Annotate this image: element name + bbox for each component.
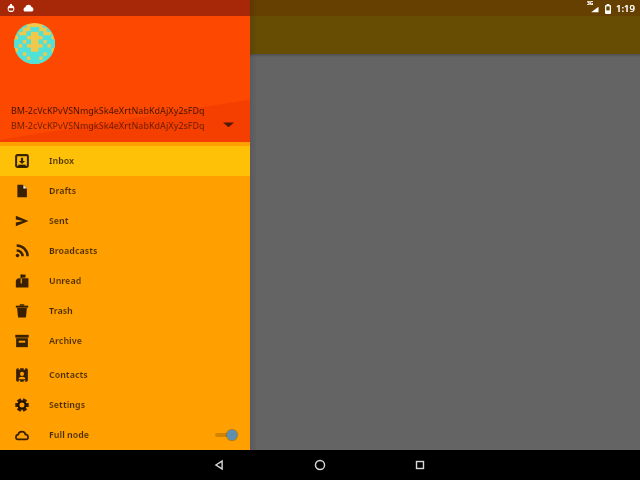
staticText: 1:19: [616, 2, 635, 15]
button[interactable]: Sent: [0, 206, 250, 236]
staticText: Contacts: [49, 369, 88, 381]
staticText: Broadcasts: [49, 245, 98, 257]
button[interactable]: Recent apps: [400, 450, 440, 480]
staticText: Archive: [49, 335, 83, 347]
button[interactable]: Back: [199, 450, 239, 480]
button[interactable]: Full node switch, on: [214, 428, 238, 442]
staticText: Unread: [49, 275, 82, 287]
button[interactable]: Inbox: [0, 146, 250, 176]
staticText: Full node: [49, 429, 90, 441]
button[interactable]: Archive: [0, 326, 250, 356]
staticText: BM-2cVcKPvVSNmgkSk4eXrtNabKdAjXy2sFDq: [11, 104, 205, 116]
button[interactable]: Trash: [0, 296, 250, 326]
button[interactable]: BM-2cVcKPvVSNmgkSk4eXrtNabKdAjXy2sFDq: [0, 0, 250, 142]
button[interactable]: Home: [300, 450, 340, 480]
button[interactable]: Contacts: [0, 360, 250, 390]
button[interactable]: Broadcasts: [0, 236, 250, 266]
button[interactable]: Settings: [0, 390, 250, 420]
staticText: 3G: [587, 0, 594, 7]
staticText: Drafts: [49, 185, 77, 197]
button[interactable]: Full node: [0, 420, 250, 450]
other: Expand account list: [223, 121, 234, 128]
button[interactable]: Unread: [0, 266, 250, 296]
staticText: Trash: [49, 305, 73, 317]
staticText: Sent: [49, 215, 69, 227]
staticText: Inbox: [49, 155, 75, 167]
button[interactable]: Drafts: [0, 176, 250, 206]
staticText: Settings: [49, 399, 86, 411]
staticText: BM-2cVcKPvVSNmgkSk4eXrtNabKdAjXy2sFDq: [11, 119, 205, 131]
